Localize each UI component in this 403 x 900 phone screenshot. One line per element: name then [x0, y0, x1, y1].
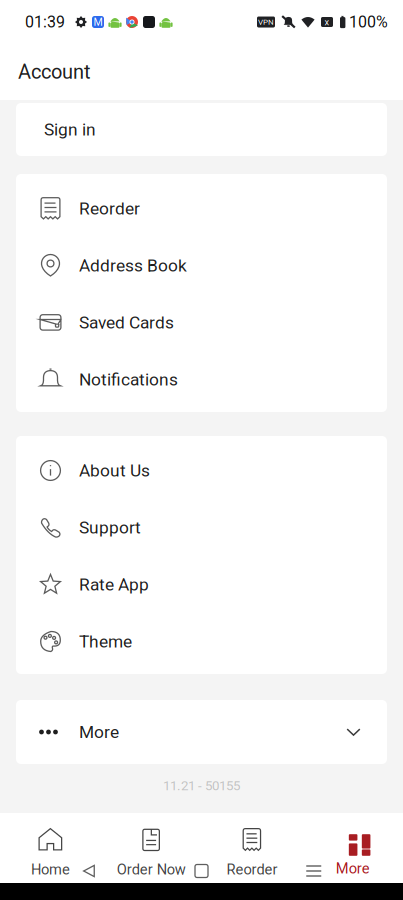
- staticText: Account: [18, 60, 91, 84]
- button[interactable]: Saved Cards: [16, 294, 387, 351]
- staticText: x: [324, 16, 329, 27]
- staticText: 100%: [349, 13, 388, 31]
- staticText: VPN: [258, 17, 274, 27]
- staticText: More: [336, 860, 370, 877]
- button[interactable]: More: [302, 810, 403, 886]
- button[interactable]: About Us: [16, 442, 387, 499]
- button[interactable]: More: [16, 700, 387, 764]
- button[interactable]: Notifications: [16, 351, 387, 408]
- button[interactable]: Back: [66, 860, 112, 882]
- button[interactable]: Reorder: [201, 809, 302, 887]
- staticText: Notifications: [79, 369, 178, 390]
- staticText: 11.21 - 50155: [163, 778, 240, 794]
- staticText: M: [93, 16, 102, 28]
- button[interactable]: Home: [0, 809, 101, 887]
- button[interactable]: Recent apps: [291, 860, 337, 882]
- staticText: Sign in: [44, 119, 96, 140]
- staticText: Reorder: [79, 198, 140, 219]
- staticText: Saved Cards: [79, 312, 174, 333]
- staticText: More: [79, 722, 119, 742]
- staticText: Reorder: [226, 861, 277, 878]
- button[interactable]: Home: [178, 860, 224, 882]
- button[interactable]: Address Book: [16, 237, 387, 294]
- button[interactable]: Rate App: [16, 556, 387, 613]
- staticText: About Us: [79, 460, 150, 481]
- staticText: Home: [31, 861, 70, 878]
- staticText: Theme: [79, 631, 132, 652]
- button[interactable]: Reorder: [16, 180, 387, 237]
- staticText: Order Now: [117, 861, 186, 878]
- button[interactable]: Sign in: [16, 103, 387, 156]
- button[interactable]: Support: [16, 499, 387, 556]
- staticText: Rate App: [79, 574, 149, 595]
- staticText: Support: [79, 517, 141, 538]
- staticText: 01:39: [25, 13, 65, 31]
- staticText: Address Book: [79, 255, 187, 276]
- button[interactable]: Theme: [16, 613, 387, 670]
- button[interactable]: Order Now: [101, 809, 202, 887]
